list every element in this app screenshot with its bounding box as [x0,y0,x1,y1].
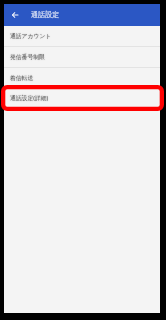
staticText: 通話設定 [31,10,60,19]
button[interactable]: 通話設定(詳細) [4,89,160,109]
staticText: 着信転送 [10,74,34,81]
button[interactable]: 通話アカウント [4,26,160,46]
staticText: 通話アカウント [10,32,52,39]
button[interactable]: 発信番号制限 [4,47,160,67]
button[interactable]: 着信転送 [4,68,160,88]
staticText: 発信番号制限 [10,53,45,60]
staticText: 通話設定(詳細) [10,94,49,102]
button[interactable]: 戻る [4,4,25,26]
